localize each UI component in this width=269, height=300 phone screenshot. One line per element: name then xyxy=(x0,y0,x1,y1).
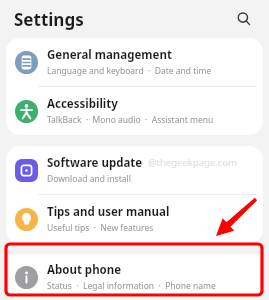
button[interactable]: About phone xyxy=(6,254,263,300)
staticText: Useful tips · New features xyxy=(47,222,154,234)
button[interactable]: Accessibility xyxy=(6,87,263,135)
staticText: General management xyxy=(47,47,172,63)
staticText: Status · Legal information · Phone name xyxy=(47,280,216,292)
staticText: Accessibility xyxy=(47,96,118,112)
staticText: Language and keyboard · Date and time xyxy=(47,65,212,77)
staticText: Settings xyxy=(14,8,84,31)
staticText: Download and install xyxy=(47,173,131,185)
button[interactable]: Tips and user manual xyxy=(6,195,263,243)
staticText: @thegeekpage.com xyxy=(148,156,237,169)
staticText: Tips and user manual xyxy=(47,204,170,220)
button[interactable]: Search xyxy=(231,6,257,32)
button[interactable]: Software update xyxy=(6,146,263,194)
staticText: Software update xyxy=(47,155,143,171)
staticText: TalkBack · Mono audio · Assistant menu xyxy=(47,114,214,126)
button[interactable]: General management xyxy=(6,38,263,86)
staticText: About phone xyxy=(47,262,122,278)
